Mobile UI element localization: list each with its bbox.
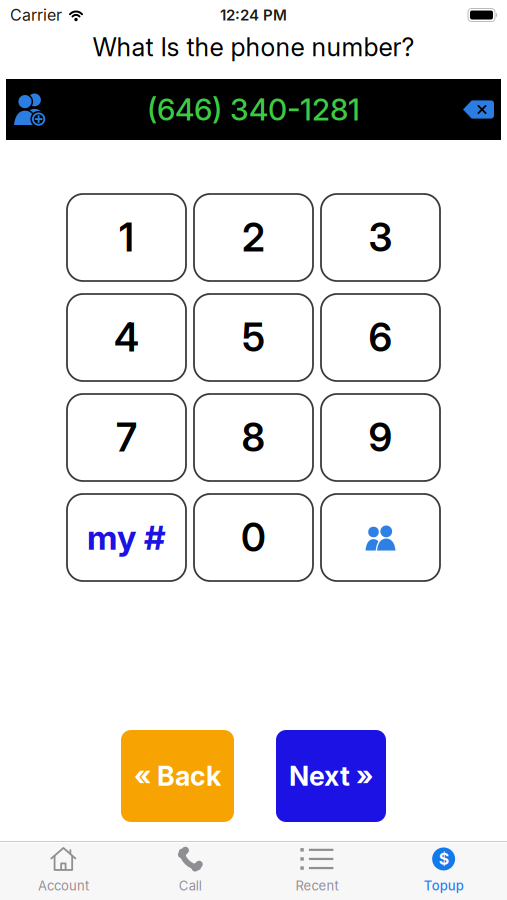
button[interactable]: Account — [0, 846, 127, 894]
button[interactable]: Next » — [276, 730, 386, 822]
button[interactable]: « Back — [121, 730, 234, 822]
button[interactable]: my # — [67, 494, 186, 581]
staticText: What Is the phone number? — [92, 32, 414, 62]
staticText: Next » — [289, 760, 373, 792]
staticText: Account — [38, 878, 89, 894]
staticText: 4 — [114, 314, 139, 361]
staticText: $ — [439, 849, 449, 869]
button[interactable]: Call — [127, 846, 254, 894]
button[interactable]: 5 — [194, 294, 313, 381]
button[interactable]: $ — [380, 846, 507, 894]
staticText: 7 — [116, 414, 137, 461]
staticText: 0 — [241, 514, 266, 561]
staticText: 8 — [241, 414, 265, 461]
staticText: Topup — [424, 878, 464, 894]
staticText: my # — [87, 517, 166, 558]
staticText: 12:24 PM — [220, 6, 287, 24]
staticText: 1 — [119, 214, 134, 261]
staticText: Recent — [295, 878, 338, 894]
button[interactable]: 9 — [321, 394, 440, 481]
button[interactable]: Delete digit — [463, 100, 494, 119]
button[interactable]: 0 — [194, 494, 313, 581]
button[interactable]: 3 — [321, 194, 440, 281]
button[interactable]: Recent — [253, 846, 380, 894]
button[interactable]: 4 — [67, 294, 186, 381]
button[interactable]: Contacts — [321, 494, 440, 581]
button[interactable]: 8 — [194, 394, 313, 481]
button[interactable]: 7 — [67, 394, 186, 481]
button[interactable]: 6 — [321, 294, 440, 381]
staticText: Carrier — [10, 5, 62, 25]
staticText: 3 — [368, 214, 392, 261]
staticText: « Back — [134, 760, 221, 792]
staticText: 9 — [368, 414, 392, 461]
staticText: Call — [179, 878, 202, 894]
staticText: 5 — [242, 314, 265, 361]
button[interactable]: 1 — [67, 194, 186, 281]
staticText: (646) 340-1281 — [147, 91, 360, 128]
staticText: 2 — [242, 214, 265, 261]
staticText: 6 — [368, 314, 392, 361]
button[interactable]: Add contact — [14, 93, 47, 125]
button[interactable]: 2 — [194, 194, 313, 281]
